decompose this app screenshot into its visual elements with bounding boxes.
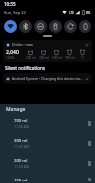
staticText: 10:35 — [4, 1, 16, 7]
staticText: 300 ml — [39, 56, 49, 60]
button[interactable]: Do not disturb — [34, 20, 47, 33]
staticText: 200 ml — [26, 56, 36, 60]
button[interactable]: Drinks • now — [3, 40, 92, 62]
staticText: 500 ml — [52, 56, 62, 60]
button[interactable]: Delete entry — [88, 178, 91, 181]
staticText: Drinks • now — [12, 42, 33, 47]
staticText: 11:50 AM — [14, 164, 30, 169]
staticText: Silent notifications — [5, 65, 46, 71]
staticText: 11:06 AM — [14, 124, 30, 129]
staticText: 200 ml — [14, 158, 28, 164]
button[interactable]: Bluetooth — [19, 20, 32, 33]
button[interactable]: 1 l — [76, 49, 89, 60]
button[interactable]: 750 ml — [63, 49, 76, 60]
button[interactable]: 300 ml — [37, 49, 50, 60]
button[interactable]: 700 ml — [0, 116, 95, 131]
staticText: 104% — [6, 56, 15, 60]
staticText: 2,040 ml — [6, 49, 21, 56]
staticText: 750 ml — [65, 56, 75, 60]
button[interactable]: Wi-Fi — [4, 20, 17, 33]
staticText: 1 l — [81, 56, 85, 60]
staticText: 11:20 AM — [14, 144, 30, 149]
staticText: 8% — [86, 11, 91, 15]
staticText: 700 ml — [14, 118, 28, 124]
staticText: Manage — [6, 106, 26, 113]
button[interactable]: Auto rotate — [64, 20, 77, 33]
staticText: Sun, Sep 22 — [4, 10, 26, 15]
button[interactable]: 250 ml — [0, 176, 95, 183]
button[interactable]: 500 ml — [50, 49, 63, 60]
button[interactable]: Battery saver — [79, 20, 91, 33]
button[interactable]: 200 ml — [24, 49, 37, 60]
button[interactable]: Android System • Charging this device vi… — [3, 73, 92, 84]
staticText: 300 ml — [14, 138, 28, 144]
button[interactable]: Flashlight — [49, 20, 62, 33]
staticText: 250 ml — [14, 178, 28, 181]
staticText: Android System • Charging this device vi… — [12, 76, 83, 81]
button[interactable]: 200 ml — [0, 156, 95, 171]
button[interactable]: 300 ml — [0, 136, 95, 151]
staticText: LTE — [69, 11, 74, 15]
